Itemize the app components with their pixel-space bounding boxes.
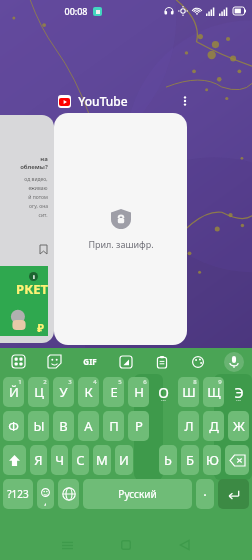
button[interactable]: Я xyxy=(30,445,47,475)
button[interactable]: Прил. зашифр. xyxy=(54,113,187,345)
button[interactable]: Е xyxy=(103,377,124,407)
button[interactable]: Translate xyxy=(108,348,144,375)
staticText: Я xyxy=(34,451,43,469)
staticText: 8 xyxy=(193,378,197,386)
button[interactable]: У xyxy=(53,377,74,407)
staticText: Й xyxy=(9,383,19,401)
staticText: ?123 xyxy=(7,487,29,501)
staticText: 3 xyxy=(68,378,72,386)
button[interactable]: Щ xyxy=(203,377,224,407)
button[interactable]: Д xyxy=(203,411,224,441)
staticText: Ь xyxy=(164,451,172,469)
button[interactable]: Stickers xyxy=(36,348,72,375)
staticText: Ц xyxy=(34,383,44,401)
button[interactable]: Themes xyxy=(180,348,216,375)
staticText: од видео, xyxy=(24,176,48,183)
staticText: РКЕТ xyxy=(16,280,48,298)
staticText: огу, она xyxy=(29,203,48,210)
button[interactable]: О xyxy=(153,377,174,407)
staticText: еживаю xyxy=(28,185,48,192)
button[interactable]: К xyxy=(78,377,99,407)
staticText: облемы? xyxy=(20,163,48,171)
staticText: й потом xyxy=(28,194,48,201)
staticText: К xyxy=(84,383,93,401)
button[interactable]: Ы xyxy=(28,411,49,441)
staticText: Щ xyxy=(207,383,221,401)
staticText: сит. xyxy=(38,212,48,219)
button[interactable]: Ф xyxy=(3,411,24,441)
staticText: на xyxy=(40,155,48,163)
button[interactable]: Ц xyxy=(28,377,49,407)
button[interactable]: А xyxy=(78,411,99,441)
button[interactable]: Shift xyxy=(3,445,26,475)
staticText: И xyxy=(119,451,129,469)
button[interactable]: Backspace xyxy=(225,445,249,475)
button[interactable]: Emoji xyxy=(37,479,54,509)
staticText: Русский xyxy=(118,487,157,501)
button[interactable]: Н xyxy=(128,377,149,407)
staticText: Е xyxy=(110,383,118,401)
staticText: 5 xyxy=(118,378,122,386)
button[interactable]: Й xyxy=(3,377,24,407)
staticText: У xyxy=(59,383,68,401)
staticText: Ю xyxy=(206,451,219,469)
button[interactable]: П xyxy=(103,411,124,441)
button[interactable]: М xyxy=(93,445,111,475)
button[interactable]: Л xyxy=(178,411,199,441)
staticText: Б xyxy=(186,451,194,469)
button[interactable]: Б xyxy=(181,445,199,475)
staticText: ₽ xyxy=(37,320,44,335)
button[interactable]: Р xyxy=(128,411,149,441)
button[interactable]: Русский xyxy=(83,479,192,509)
staticText: Р xyxy=(135,417,143,435)
button[interactable]: Menu xyxy=(0,348,36,375)
staticText: Л xyxy=(184,417,194,435)
button[interactable]: ?123 xyxy=(3,479,33,509)
staticText: Д xyxy=(209,417,219,435)
staticText: 1 xyxy=(18,378,22,386)
button[interactable]: В xyxy=(53,411,74,441)
button[interactable]: Ю xyxy=(203,445,221,475)
staticText: М xyxy=(96,451,108,469)
button[interactable]: Voice input xyxy=(216,348,252,375)
staticText: 00:08 xyxy=(64,5,88,17)
button[interactable]: Э xyxy=(228,377,249,407)
staticText: Ы xyxy=(33,417,45,435)
staticText: ··· xyxy=(236,396,241,404)
staticText: Ч xyxy=(55,451,64,469)
button[interactable] xyxy=(153,411,174,441)
staticText: А xyxy=(84,417,93,435)
button[interactable]: Clipboard xyxy=(144,348,180,375)
staticText: П xyxy=(109,417,119,435)
button[interactable]: И xyxy=(115,445,133,475)
button[interactable]: Ж xyxy=(228,411,249,441)
button[interactable]: . xyxy=(196,479,214,509)
button[interactable]: на xyxy=(0,115,54,343)
button[interactable]: Ь xyxy=(159,445,177,475)
staticText: 6 xyxy=(143,378,147,386)
button[interactable]: Enter xyxy=(218,479,249,509)
staticText: Э xyxy=(234,383,244,402)
staticText: 4 xyxy=(93,378,97,386)
staticText: В xyxy=(59,417,68,435)
staticText: i xyxy=(33,273,35,281)
staticText: Прил. зашифр. xyxy=(88,238,154,250)
staticText: YouTube xyxy=(78,93,128,109)
button[interactable]: More options xyxy=(176,92,194,110)
button[interactable]: Change language xyxy=(58,479,79,509)
button[interactable]: С xyxy=(72,445,89,475)
staticText: GIF xyxy=(83,356,97,367)
staticText: ··· xyxy=(161,396,166,404)
staticText: , xyxy=(44,495,47,507)
button[interactable]: Ч xyxy=(51,445,68,475)
staticText: 2 xyxy=(43,378,47,386)
button[interactable]: GIF xyxy=(72,348,108,375)
staticText: . xyxy=(203,482,207,500)
staticText: 9 xyxy=(218,378,222,386)
button[interactable]: Ш xyxy=(178,377,199,407)
staticText: Ф xyxy=(8,417,19,435)
